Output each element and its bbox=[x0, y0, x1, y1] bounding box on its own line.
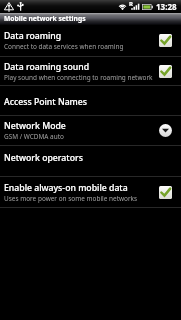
button[interactable]: Enable always-on mobile data bbox=[0, 177, 181, 207]
staticText: Play sound when connecting to roaming ne… bbox=[4, 73, 153, 82]
staticText: Data roaming sound bbox=[4, 61, 90, 73]
button[interactable]: Data roaming sound bbox=[0, 57, 181, 85]
staticText: Data roaming bbox=[4, 30, 62, 42]
staticText: R bbox=[129, 0, 133, 8]
button[interactable]: Toggle setting bbox=[159, 34, 172, 47]
staticText: Mobile network settings bbox=[4, 14, 86, 23]
button[interactable]: Data roaming bbox=[0, 25, 181, 56]
staticText: GSM / WCDMA auto bbox=[4, 132, 64, 141]
button[interactable]: Network operators bbox=[0, 146, 181, 176]
staticText: Connect to data services when roaming bbox=[4, 42, 124, 51]
staticText: Network Mode bbox=[4, 120, 66, 132]
staticText: Network operators bbox=[4, 152, 83, 164]
staticText: Enable always-on mobile data bbox=[4, 182, 128, 194]
button[interactable]: Open network mode list bbox=[159, 124, 172, 137]
button[interactable]: Toggle setting bbox=[159, 186, 172, 199]
staticText: Uses more power on some mobile networks bbox=[4, 194, 138, 203]
button[interactable]: Access Point Names bbox=[0, 86, 181, 115]
staticText: 13:28 bbox=[156, 1, 177, 12]
button[interactable]: Toggle setting bbox=[159, 65, 172, 78]
staticText: Access Point Names bbox=[4, 96, 88, 108]
button[interactable]: Network Mode bbox=[0, 116, 181, 145]
